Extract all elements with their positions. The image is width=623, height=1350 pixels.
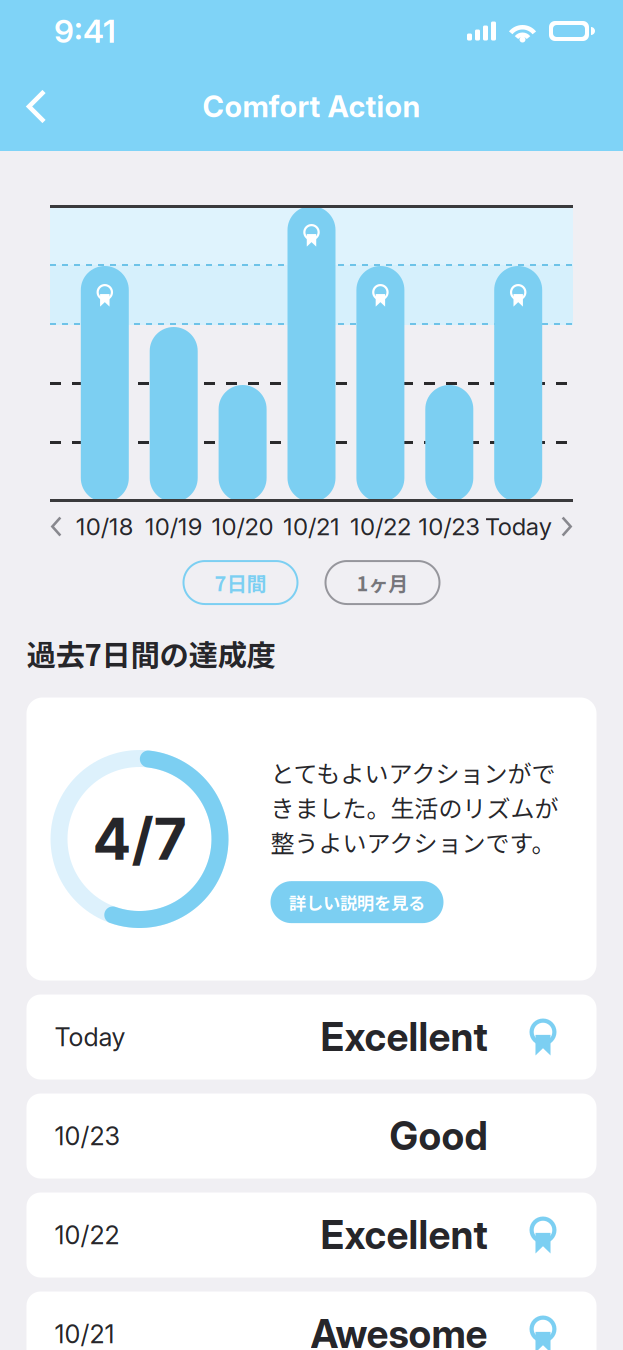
staticText: 10/21	[54, 1319, 114, 1349]
button[interactable]: 10/23	[26, 1093, 596, 1178]
staticText: 10/19	[145, 512, 203, 541]
staticText: Excellent	[320, 1212, 487, 1258]
button[interactable]: Next week	[553, 515, 581, 537]
button[interactable]: 10/21	[26, 1291, 596, 1350]
staticText: 10/20	[212, 512, 274, 541]
staticText: 詳しい説明を見る	[289, 890, 425, 915]
button[interactable]: 1ヶ月	[325, 561, 439, 604]
staticText: 10/21	[283, 512, 340, 541]
staticText: 4/7	[92, 804, 186, 874]
staticText: 過去7日間の達成度	[26, 632, 275, 674]
staticText: 10/22	[54, 1220, 119, 1250]
staticText: Excellent	[320, 1014, 487, 1060]
staticText: Comfort Action	[202, 89, 420, 124]
button[interactable]: 詳しい説明を見る	[270, 881, 443, 923]
staticText: 10/18	[76, 512, 134, 541]
staticText: 10/23	[54, 1121, 120, 1151]
staticText: 10/22	[350, 512, 411, 541]
staticText: Today	[54, 1022, 125, 1052]
staticText: Today	[485, 512, 552, 541]
staticText: Good	[389, 1113, 487, 1159]
staticText: 1ヶ月	[356, 568, 408, 597]
button[interactable]: Back	[0, 75, 67, 137]
button[interactable]: 10/22	[26, 1192, 596, 1277]
staticText: 9:41	[54, 12, 116, 50]
staticText: Awesome	[310, 1311, 487, 1350]
button[interactable]: Today	[26, 994, 596, 1079]
staticText: とてもよいアクションができました。生活のリズムが整うよいアクションです。	[270, 755, 558, 859]
staticText: 10/23	[418, 512, 480, 541]
button[interactable]: 7日間	[183, 561, 297, 604]
button[interactable]: Previous week	[42, 515, 70, 537]
staticText: 7日間	[214, 568, 266, 597]
